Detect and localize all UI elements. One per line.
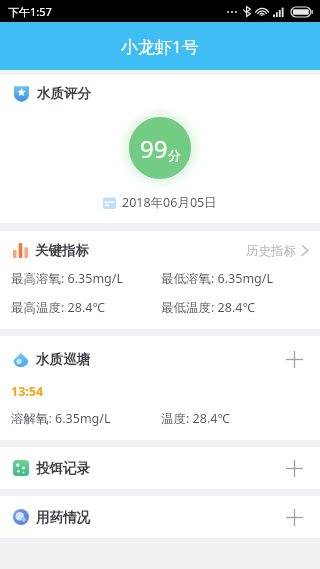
staticText: 分 xyxy=(168,147,181,163)
staticText: 用药情况 xyxy=(36,509,90,526)
button[interactable]: Add water quality record xyxy=(281,346,307,372)
button[interactable]: 关键指标 xyxy=(0,231,320,259)
staticText: 最高温度: 28.4℃ xyxy=(11,299,161,316)
staticText: 关键指标 xyxy=(35,242,89,259)
staticText: 水质评分 xyxy=(37,85,91,102)
staticText: 2018年06月05日 xyxy=(122,194,217,211)
staticText: 下午1:57 xyxy=(8,4,52,19)
button[interactable]: Add 投饵记录 xyxy=(281,455,307,481)
staticText: 最低温度: 28.4℃ xyxy=(161,299,312,316)
staticText: 历史指标 xyxy=(246,243,296,259)
button[interactable]: Add 用药情况 xyxy=(281,504,307,530)
staticText: 最低溶氧: 6.35mg/L xyxy=(161,270,312,287)
staticText: 99 xyxy=(140,132,168,165)
staticText: 最高溶氧: 6.35mg/L xyxy=(11,270,161,287)
staticText: 温度: 28.4℃ xyxy=(161,410,312,427)
staticText: 溶解氧: 6.35mg/L xyxy=(11,410,161,427)
staticText: 投饵记录 xyxy=(36,460,90,477)
staticText: 13:54 xyxy=(11,383,44,400)
staticText: 小龙虾1号 xyxy=(121,35,199,58)
staticText: 水质巡塘 xyxy=(36,351,90,368)
